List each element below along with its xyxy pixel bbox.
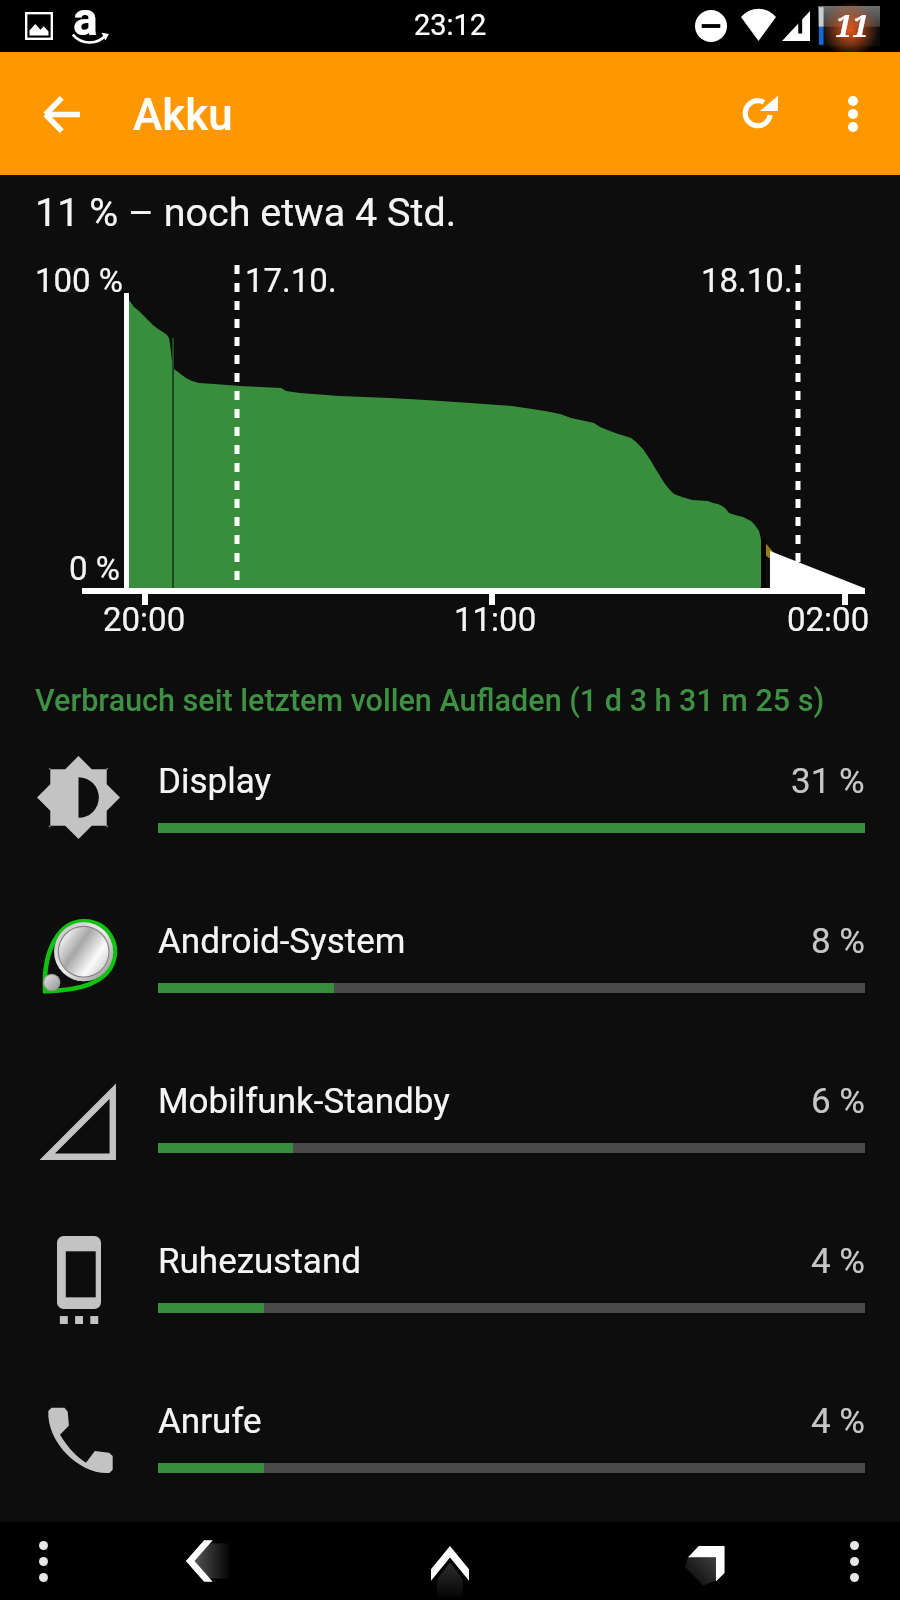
button[interactable]: Menu	[14, 1532, 72, 1590]
staticText: Mobilfunk-Standby	[158, 1081, 450, 1122]
button[interactable]: Home	[405, 1522, 495, 1600]
staticText: 20:00	[103, 600, 186, 639]
staticText: Ruhezustand	[158, 1241, 361, 1282]
staticText: Verbrauch seit letztem vollen Aufladen (…	[35, 683, 825, 719]
staticText: Android-System	[158, 921, 406, 962]
button[interactable]: Anrufe	[0, 1379, 900, 1539]
staticText: 6 %	[811, 1081, 865, 1122]
staticText: 11	[835, 5, 869, 45]
button[interactable]: Back	[19, 71, 105, 157]
button[interactable]: Back	[162, 1522, 252, 1600]
staticText: 11:00	[454, 600, 537, 639]
button[interactable]: Recents	[660, 1522, 750, 1600]
staticText: 17.10.	[245, 261, 337, 300]
staticText: 8 %	[811, 921, 865, 962]
button[interactable]: Refresh	[718, 72, 802, 156]
staticText: 100 %	[35, 261, 123, 300]
button[interactable]: Options	[825, 1532, 883, 1590]
staticText: 4 %	[811, 1241, 865, 1282]
staticText: 11 % – noch etwa 4 Std.	[35, 189, 457, 235]
staticText: Anrufe	[158, 1401, 262, 1442]
staticText: 4 %	[811, 1401, 865, 1442]
button[interactable]: More options	[818, 79, 888, 149]
staticText: Akku	[133, 89, 233, 141]
staticText: 02:00	[787, 600, 870, 639]
staticText: 23:12	[414, 8, 487, 42]
button[interactable]: Android-System	[0, 899, 900, 1059]
staticText: Display	[158, 761, 272, 802]
button[interactable]: Mobilfunk-Standby	[0, 1059, 900, 1219]
staticText: 18.10.	[701, 261, 793, 300]
staticText: 31 %	[791, 761, 865, 802]
button[interactable]: Ruhezustand	[0, 1219, 900, 1379]
staticText: a	[73, 0, 98, 44]
staticText: 0 %	[69, 549, 120, 588]
button[interactable]: Display	[0, 739, 900, 899]
